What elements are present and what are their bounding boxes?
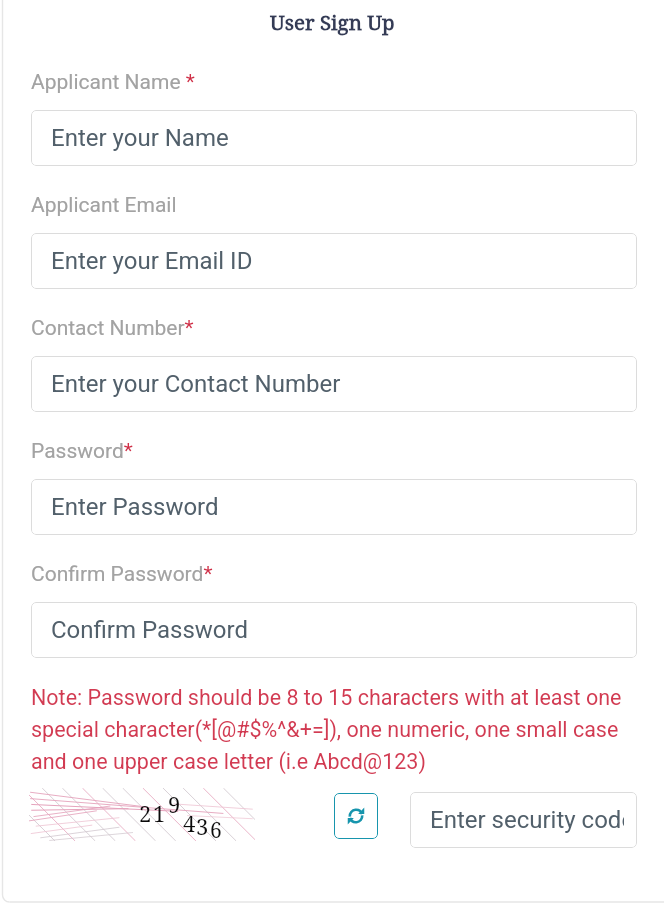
staticText: 2 (139, 798, 152, 828)
staticText: Enter security code (430, 806, 624, 834)
staticText: 1 (153, 798, 166, 828)
staticText: 9 (168, 789, 181, 819)
staticText: Enter your Email ID (51, 247, 253, 275)
staticText: 4 (183, 808, 196, 838)
staticText: User Sign Up (270, 8, 395, 36)
staticText: Password* (31, 439, 133, 464)
staticText: 3 (196, 811, 209, 841)
button[interactable]: Enter security code (410, 792, 637, 848)
staticText: Applicant Name * (31, 70, 195, 95)
button[interactable]: Enter your Contact Number (31, 356, 637, 412)
button[interactable]: Refresh security code (334, 793, 378, 839)
button[interactable]: Confirm Password (31, 602, 637, 658)
staticText: Enter your Contact Number (51, 370, 341, 398)
staticText: Contact Number* (31, 316, 194, 341)
button[interactable]: Enter your Email ID (31, 233, 637, 289)
button[interactable]: Enter Password (31, 479, 637, 535)
staticText: Enter your Name (51, 124, 229, 152)
staticText: Confirm Password* (31, 562, 213, 587)
staticText: 6 (210, 816, 222, 841)
staticText: Confirm Password (51, 616, 249, 644)
staticText: Applicant Email (31, 193, 177, 218)
button[interactable]: Enter your Name (31, 110, 637, 166)
staticText: Note: Password should be 8 to 15 charact… (31, 685, 637, 774)
staticText: Enter Password (51, 493, 219, 521)
